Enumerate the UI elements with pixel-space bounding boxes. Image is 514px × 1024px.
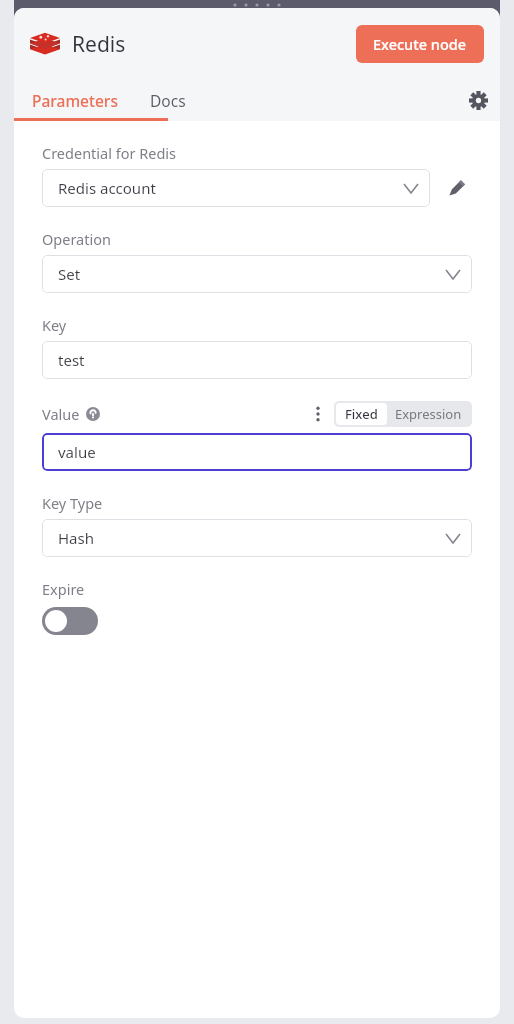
staticText: Expire xyxy=(42,579,85,599)
staticText: Redis xyxy=(72,30,126,59)
button[interactable]: value xyxy=(42,433,472,471)
other: Drag handle xyxy=(232,2,284,14)
button[interactable]: Docs xyxy=(136,80,200,121)
staticText: Credential for Redis xyxy=(42,143,177,163)
staticText: Expression xyxy=(395,405,462,423)
staticText: Set xyxy=(58,264,81,284)
staticText: Hash xyxy=(58,528,94,548)
button[interactable]: Settings xyxy=(456,80,500,121)
button[interactable]: Hash xyxy=(42,519,472,557)
staticText: Operation xyxy=(42,229,111,249)
staticText: Fixed xyxy=(345,405,378,423)
button[interactable]: Fixed xyxy=(336,403,387,425)
staticText: Key xyxy=(42,315,67,335)
button[interactable]: test xyxy=(42,341,472,379)
button[interactable]: Execute node xyxy=(356,25,484,63)
button[interactable]: Help xyxy=(86,407,100,421)
button[interactable]: Expire toggle xyxy=(42,607,98,635)
button[interactable]: Expression xyxy=(387,403,470,425)
button[interactable]: More options xyxy=(310,404,326,424)
staticText: Redis account xyxy=(58,178,156,198)
button[interactable]: Set xyxy=(42,255,472,293)
button[interactable]: Redis account xyxy=(42,169,430,207)
button[interactable]: Parameters xyxy=(14,80,136,121)
staticText: Parameters xyxy=(32,90,118,111)
staticText: Key Type xyxy=(42,493,103,513)
button[interactable]: Edit credential xyxy=(442,173,472,203)
staticText: value xyxy=(58,442,96,462)
staticText: Execute node xyxy=(373,34,467,54)
staticText: test xyxy=(58,350,85,370)
staticText: Value xyxy=(42,404,80,424)
staticText: Docs xyxy=(150,90,186,111)
